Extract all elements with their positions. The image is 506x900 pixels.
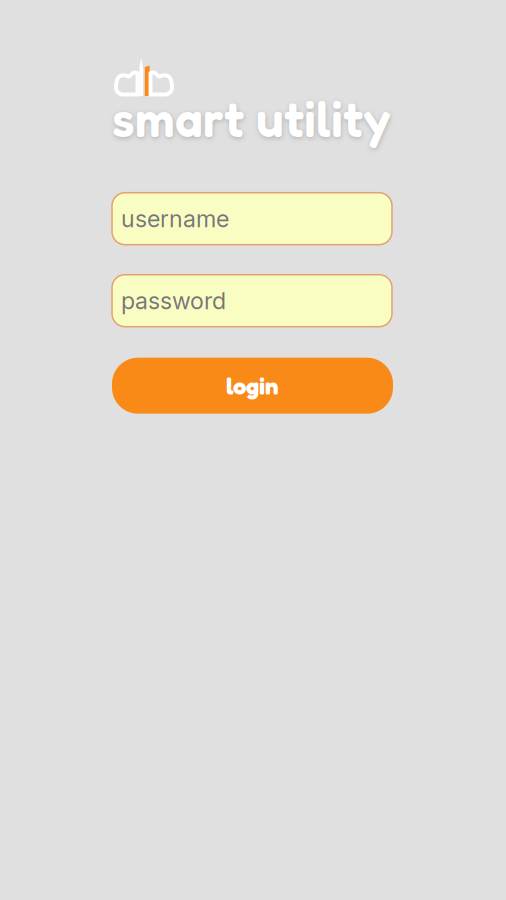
button[interactable]: password — [112, 275, 392, 327]
staticText: smart utility — [112, 89, 391, 149]
staticText: username — [121, 205, 229, 233]
staticText: password — [121, 287, 226, 315]
staticText: login — [226, 371, 279, 400]
button[interactable]: username — [112, 193, 392, 245]
button[interactable]: login — [112, 358, 393, 414]
